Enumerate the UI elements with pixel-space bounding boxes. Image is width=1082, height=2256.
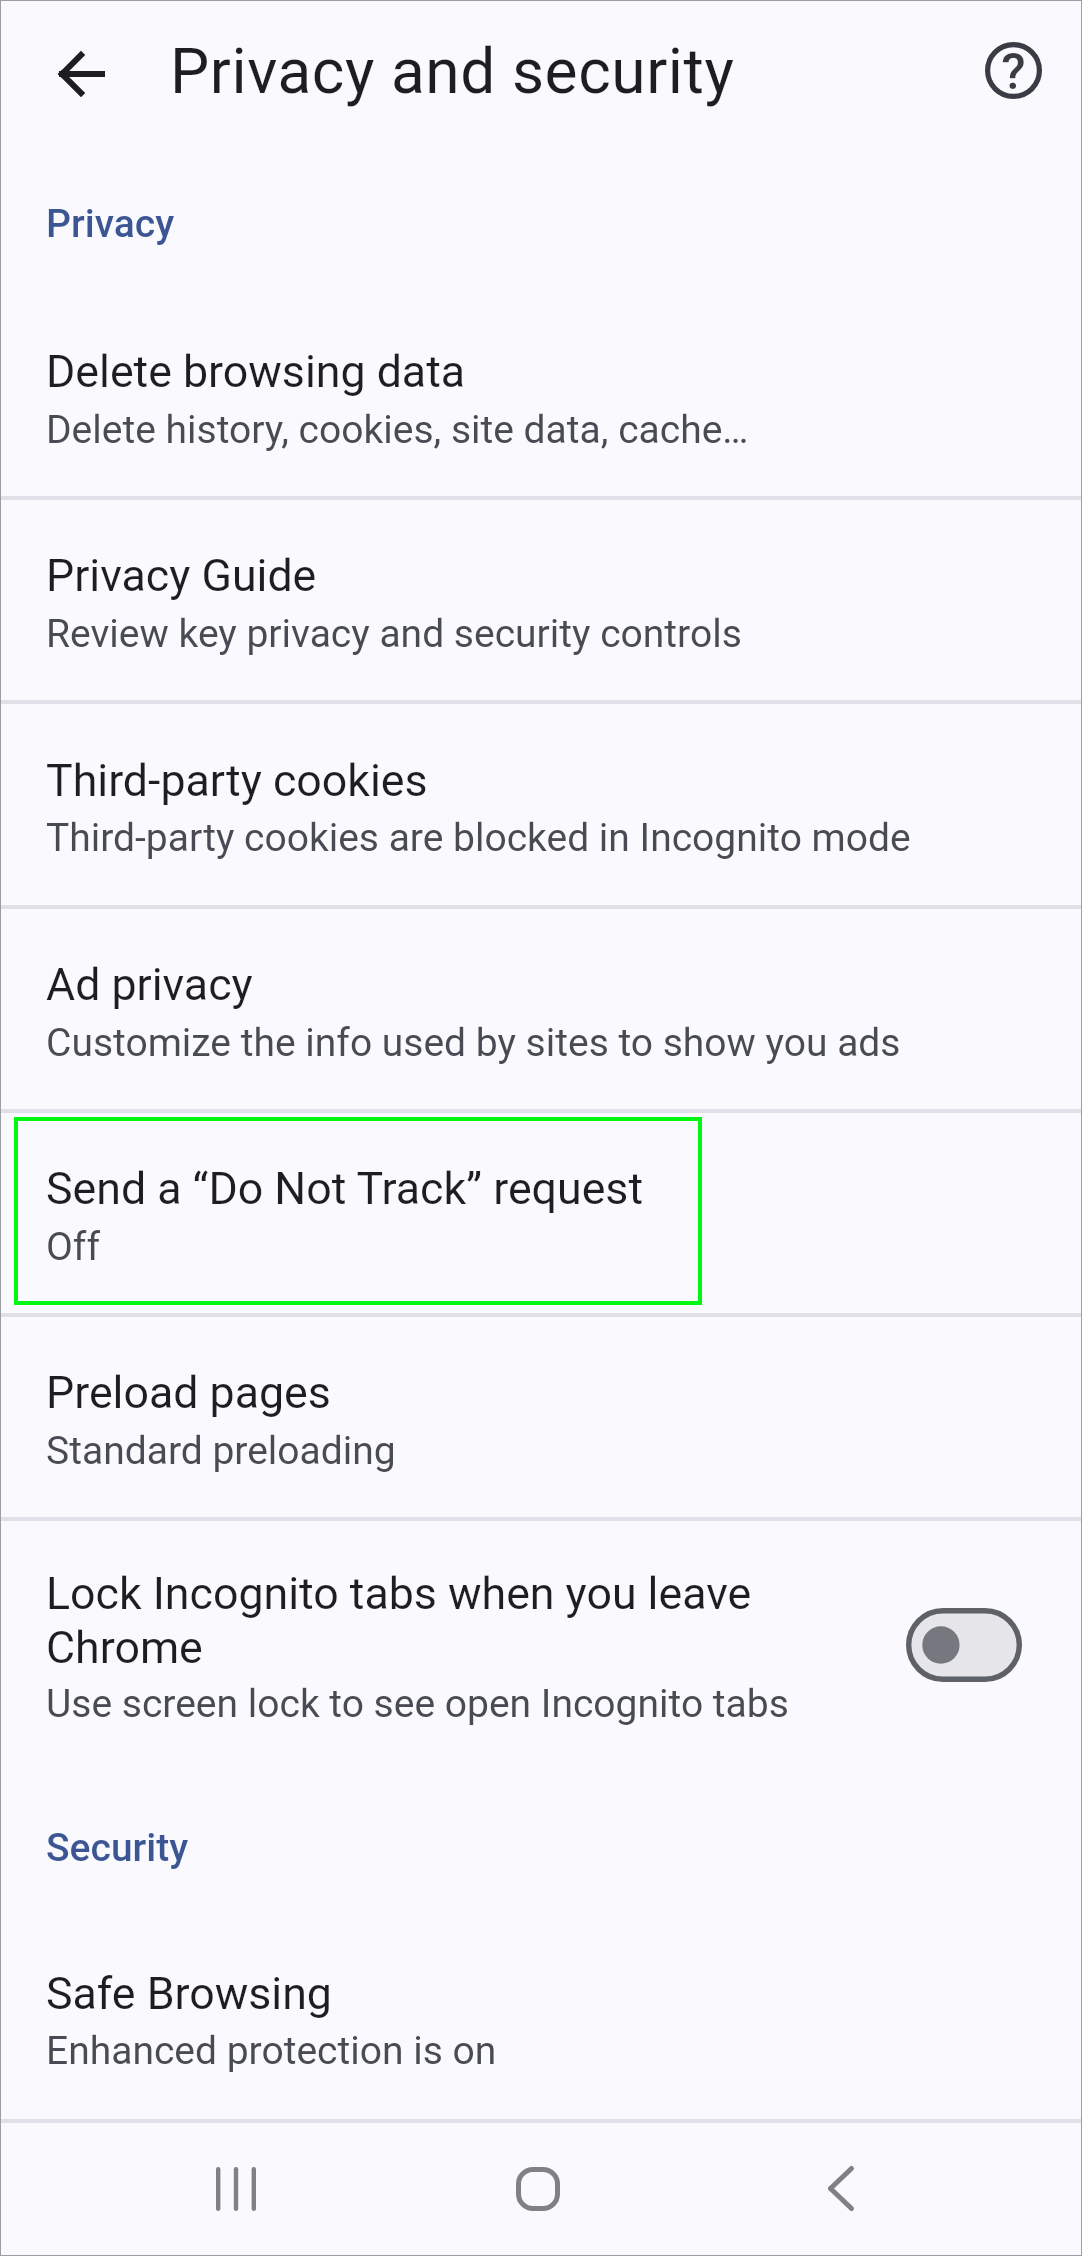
- staticText: Delete history, cookies, site data, cach…: [46, 407, 1046, 453]
- staticText: Privacy: [46, 201, 175, 247]
- staticText: Preload pages: [46, 1367, 1046, 1419]
- button[interactable]: Recent apps: [168, 2121, 304, 2256]
- staticText: Lock Incognito tabs when you leave Chrom…: [46, 1568, 836, 1674]
- staticText: Privacy and security: [170, 35, 735, 108]
- staticText: Third-party cookies are blocked in Incog…: [46, 815, 1046, 861]
- button[interactable]: Back: [22, 14, 142, 134]
- button[interactable]: Ad privacy: [0, 907, 1082, 1111]
- staticText: Review key privacy and security controls: [46, 611, 1046, 657]
- staticText: Customize the info used by sites to show…: [46, 1020, 1046, 1066]
- button[interactable]: Back: [773, 2121, 909, 2256]
- staticText: Off: [46, 1224, 1046, 1270]
- button[interactable]: Lock Incognito tabs when you leave Chrom…: [0, 1519, 1082, 1809]
- button[interactable]: Send a “Do Not Track” request: [0, 1111, 1082, 1315]
- button[interactable]: Privacy Guide: [0, 498, 1082, 702]
- staticText: Third-party cookies: [46, 755, 1046, 807]
- staticText: Security: [46, 1825, 189, 1871]
- button[interactable]: Preload pages: [0, 1315, 1082, 1519]
- staticText: Delete browsing data: [46, 346, 1046, 398]
- staticText: Safe Browsing: [46, 1968, 1046, 2020]
- staticText: Privacy Guide: [46, 550, 1046, 602]
- button[interactable]: Help: [955, 12, 1071, 128]
- button[interactable]: Delete browsing data: [0, 294, 1082, 498]
- staticText: Ad privacy: [46, 959, 1046, 1011]
- button[interactable]: Safe Browsing: [0, 1914, 1082, 2121]
- staticText: Enhanced protection is on: [46, 2028, 1046, 2074]
- button[interactable]: Third-party cookies: [0, 702, 1082, 907]
- staticText: Use screen lock to see open Incognito ta…: [46, 1681, 996, 1727]
- staticText: ?: [1001, 43, 1026, 100]
- staticText: Send a “Do Not Track” request: [46, 1163, 1046, 1215]
- button[interactable]: Home: [470, 2121, 606, 2256]
- staticText: Standard preloading: [46, 1428, 1046, 1474]
